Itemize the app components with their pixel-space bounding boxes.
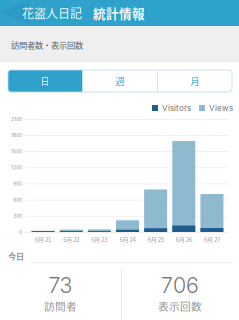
staticText: 6月 21 [35,235,51,244]
staticText: 6月 24 [119,235,135,244]
staticText: 2100 [11,116,22,122]
staticText: 6月 22 [63,235,79,244]
button[interactable]: 戻る 花盗人日記 [0,0,86,26]
staticText: 300 [13,213,22,219]
staticText: 1800 [11,132,22,138]
staticText: 6月 27 [204,235,220,244]
staticText: 600 [13,196,22,203]
staticText: 73 [48,272,72,298]
staticText: 今日 [8,250,24,262]
staticText: 706 [161,272,199,298]
staticText: 週 [115,74,124,88]
button[interactable]: 日 [8,70,82,92]
staticText: 花盗人日記 [22,4,82,22]
staticText: Views [209,103,233,113]
staticText: 900 [13,180,22,187]
staticText: 月 [191,74,200,88]
staticText: 訪問者 [44,298,77,314]
staticText: 0 [19,229,22,235]
staticText: Visitors [162,103,191,113]
staticText: 1200 [11,164,22,171]
staticText: 6月 23 [91,235,107,244]
staticText: 6月 26 [176,235,192,244]
staticText: 日 [40,74,49,88]
staticText: 統計情報 [93,4,145,22]
button[interactable]: 月 [158,70,232,92]
staticText: 1500 [11,148,22,155]
staticText: 6月 25 [148,235,164,244]
button[interactable]: 週 [83,70,157,92]
staticText: 表示回数 [158,298,202,314]
staticText: 訪問者数・表示回数 [11,39,83,51]
